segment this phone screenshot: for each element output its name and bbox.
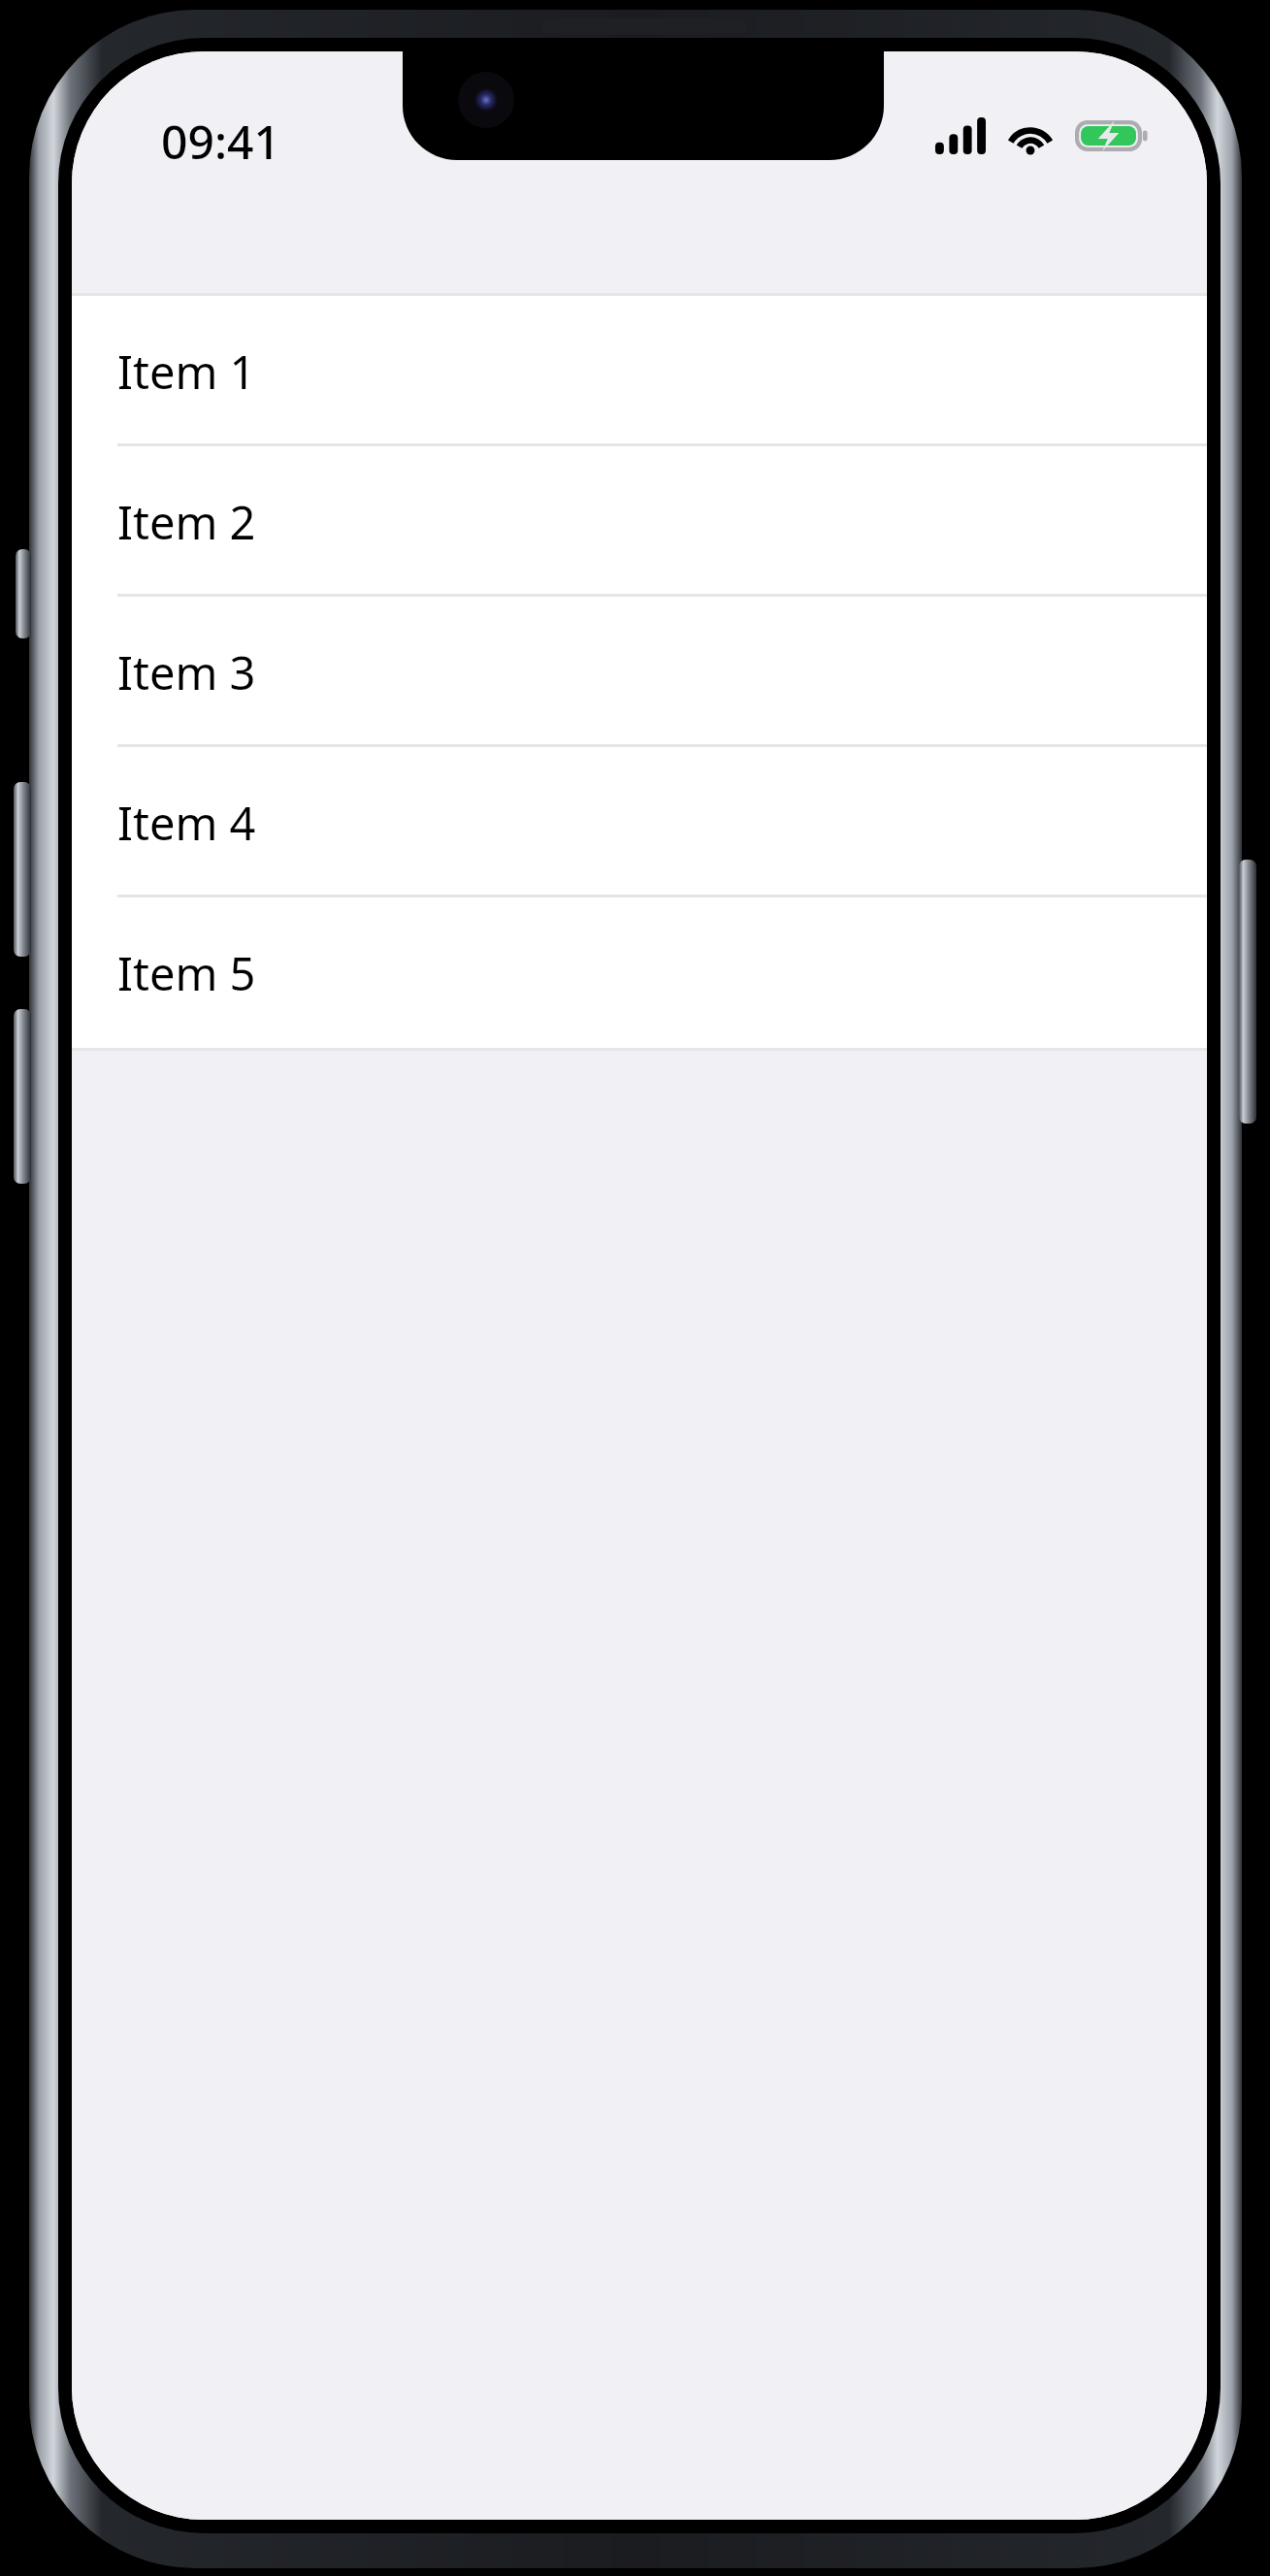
button[interactable]: Item 3 <box>72 597 1207 747</box>
button[interactable]: Item 5 <box>72 897 1207 1048</box>
button[interactable]: Item 1 <box>72 296 1207 446</box>
button[interactable]: Item 4 <box>72 747 1207 897</box>
staticText: Item 3 <box>117 641 256 703</box>
staticText: Item 1 <box>117 341 256 403</box>
other: Battery charging <box>1075 117 1151 154</box>
other: Wi-Fi <box>1005 117 1056 154</box>
other: Cellular signal <box>935 117 986 154</box>
staticText: Item 5 <box>117 942 256 1004</box>
button[interactable]: Item 2 <box>72 446 1207 597</box>
staticText: Item 2 <box>117 491 256 553</box>
staticText: 09:41 <box>161 110 280 173</box>
staticText: Item 4 <box>117 792 256 854</box>
